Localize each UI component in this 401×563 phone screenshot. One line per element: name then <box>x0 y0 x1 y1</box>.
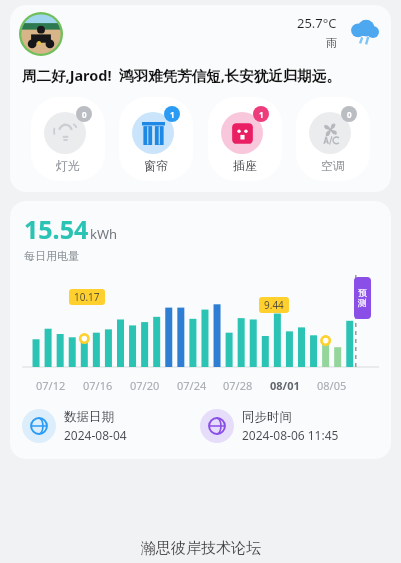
button[interactable]: 1 <box>208 97 282 181</box>
staticText: 07/20 <box>130 378 160 393</box>
staticText: 空调 <box>321 158 345 173</box>
staticText: kWh <box>90 225 118 243</box>
staticText: 同步时间 <box>242 409 292 425</box>
staticText: 07/12 <box>36 378 66 393</box>
button[interactable]: 同步时间 <box>200 409 379 443</box>
staticText: 预 测 <box>358 287 367 309</box>
staticText: 周二好,Jarod! 鸿羽难凭芳信短,长安犹近归期远。 <box>22 65 341 85</box>
button[interactable]: 1 <box>119 97 193 181</box>
staticText: 08/01 <box>270 378 300 393</box>
staticText: 插座 <box>233 158 257 173</box>
staticText: 15.54 <box>24 212 89 246</box>
staticText: 窗帘 <box>144 158 168 173</box>
button[interactable]: 0 <box>31 97 105 181</box>
other: Profile <box>19 12 63 56</box>
staticText: 瀚思彼岸技术论坛 <box>141 539 261 558</box>
button[interactable]: 数据日期 <box>22 409 200 443</box>
staticText: 07/28 <box>223 378 253 393</box>
staticText: 0 <box>82 109 87 120</box>
staticText: 1 <box>259 109 264 120</box>
staticText: 每日用电量 <box>24 249 79 263</box>
staticText: 07/24 <box>177 378 207 393</box>
staticText: 08/05 <box>317 378 347 393</box>
other: Rain weather <box>349 19 379 46</box>
staticText: 2024-08-04 <box>64 427 127 443</box>
staticText: 10.17 <box>74 290 100 304</box>
staticText: 数据日期 <box>64 409 114 425</box>
staticText: 1 <box>170 109 175 120</box>
staticText: 25.7°C <box>297 14 337 32</box>
staticText: 2024-08-06 11:45 <box>242 427 339 443</box>
staticText: 9.44 <box>264 298 284 312</box>
staticText: 雨 <box>326 36 337 50</box>
staticText: 0 <box>347 109 352 120</box>
button[interactable]: 0 <box>296 97 370 181</box>
staticText: 07/16 <box>83 378 113 393</box>
staticText: 灯光 <box>56 158 80 173</box>
